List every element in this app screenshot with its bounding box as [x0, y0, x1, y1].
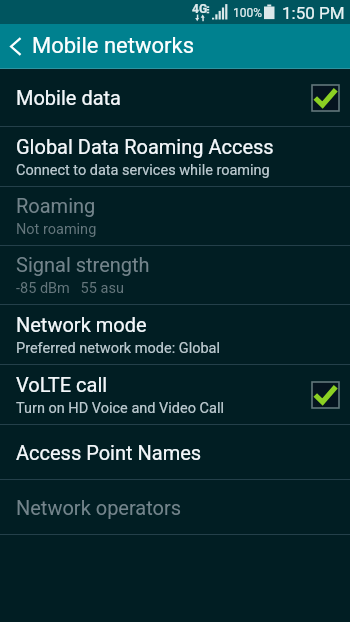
staticText: Mobile networks	[32, 33, 194, 59]
other: Navigate up	[10, 37, 21, 56]
button[interactable]: Signal strength	[0, 246, 350, 304]
button[interactable]: Access Point Names	[0, 425, 350, 479]
button[interactable]: Network operators	[0, 480, 350, 534]
staticText: Network mode	[16, 313, 147, 336]
button[interactable]: Network mode	[0, 305, 350, 364]
staticText: 100%	[233, 6, 263, 20]
button[interactable]: Global Data Roaming Access	[0, 127, 350, 186]
staticText: Preferred network mode: Global	[16, 340, 220, 357]
button[interactable]: Mobile data	[0, 69, 350, 126]
staticText: Access Point Names	[16, 441, 202, 464]
button[interactable]: Navigate up	[0, 24, 350, 68]
staticText: Not roaming	[16, 221, 97, 238]
other: Battery full	[264, 4, 275, 20]
other: Signal strength	[212, 4, 228, 20]
staticText: Global Data Roaming Access	[16, 135, 274, 158]
button[interactable]: Toggle switch	[312, 382, 339, 408]
staticText: 1:50 PM	[282, 3, 345, 23]
staticText: Connect to data services while roaming	[16, 162, 270, 179]
staticText: Signal strength	[16, 253, 150, 276]
staticText: Mobile data	[16, 86, 121, 109]
staticText: Network operators	[16, 496, 182, 519]
staticText: -85 dBm 55 asu	[16, 280, 124, 297]
button[interactable]: Toggle switch	[312, 85, 339, 111]
other: 4G LTE	[192, 3, 210, 22]
staticText: Roaming	[16, 194, 96, 217]
staticText: 4G	[192, 2, 208, 16]
staticText: VoLTE call	[16, 373, 108, 396]
button[interactable]: VoLTE call	[0, 365, 350, 424]
button[interactable]: Roaming	[0, 187, 350, 245]
staticText: Turn on HD Voice and Video Call	[16, 400, 224, 417]
